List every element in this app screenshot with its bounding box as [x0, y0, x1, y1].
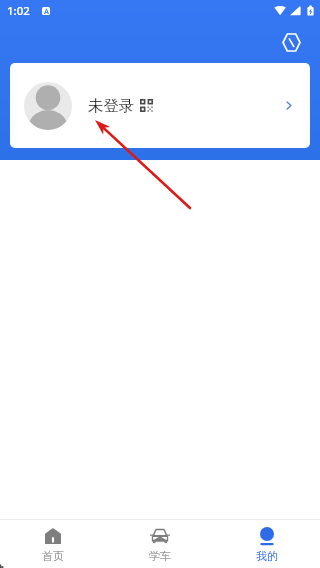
button[interactable]: 未登录 [10, 63, 310, 148]
button[interactable]: 学车 [106, 520, 213, 568]
staticText: 未登录 [88, 96, 135, 115]
staticText: 首页 [42, 549, 64, 563]
staticText: 1:02 [7, 3, 30, 19]
button[interactable]: 首页 [0, 520, 106, 568]
button[interactable]: Settings [277, 28, 306, 57]
button[interactable]: 我的 [213, 520, 320, 568]
other: Open profile [286, 101, 292, 110]
staticText: 学车 [149, 549, 171, 563]
staticText: 我的 [256, 549, 278, 563]
other: My QR code [140, 99, 153, 112]
